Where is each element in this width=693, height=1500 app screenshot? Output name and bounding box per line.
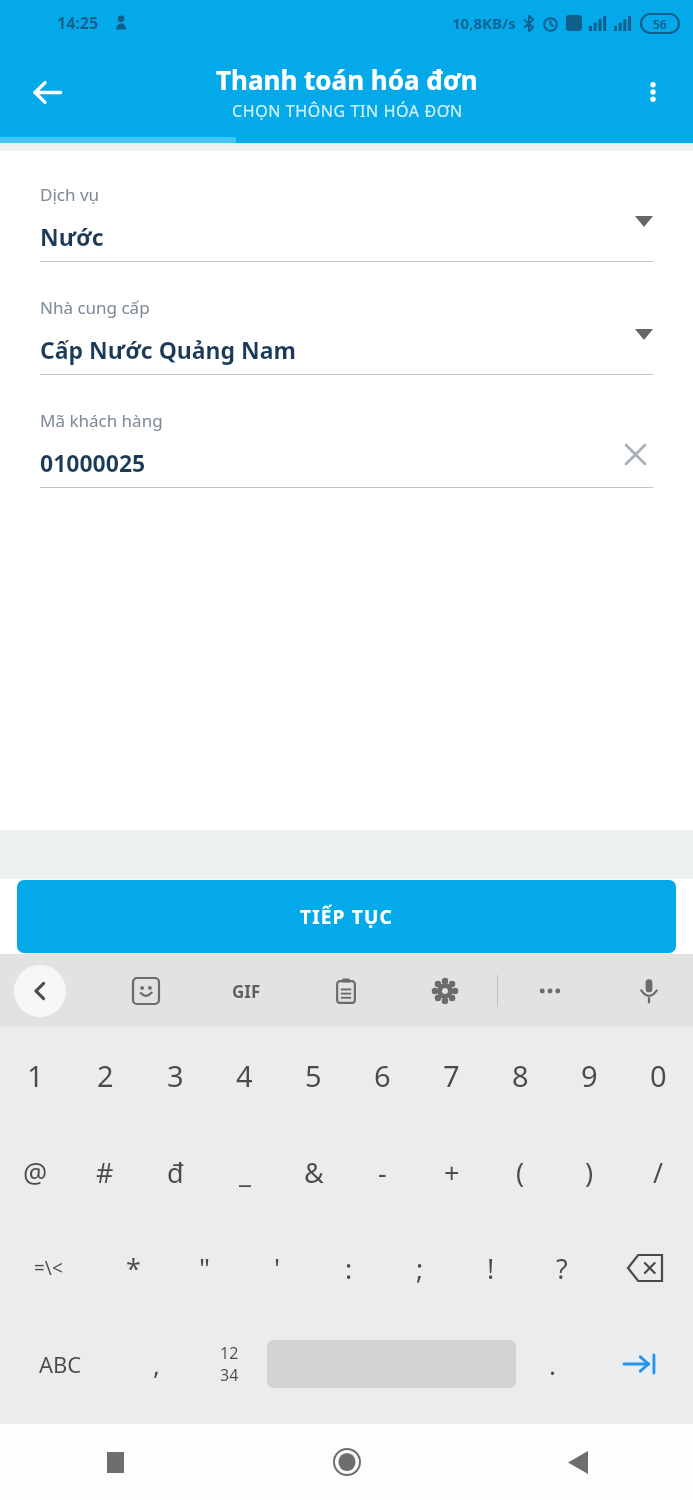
staticText: CHỌN THÔNG TIN HÓA ĐƠN	[232, 100, 463, 122]
staticText: @	[23, 1154, 48, 1191]
button[interactable]: 8	[486, 1027, 555, 1124]
staticText: 12	[220, 1342, 239, 1364]
button[interactable]: 9	[555, 1027, 624, 1124]
staticText: 0	[650, 1056, 667, 1095]
staticText: *	[126, 1250, 141, 1287]
staticText: Cấp Nước Quảng Nam	[40, 334, 296, 365]
button[interactable]: Home	[231, 1424, 462, 1500]
button[interactable]: ,	[120, 1316, 192, 1412]
button[interactable]: Back	[462, 1424, 693, 1500]
staticText: 14:25	[57, 12, 99, 34]
staticText: ABC	[39, 1349, 82, 1379]
staticText: )	[585, 1154, 594, 1191]
staticText: 1	[27, 1056, 44, 1095]
button[interactable]: More	[526, 967, 574, 1015]
button[interactable]: GIF	[221, 966, 271, 1016]
button[interactable]: _	[210, 1124, 279, 1220]
staticText: ?	[556, 1250, 568, 1287]
staticText: :	[345, 1250, 353, 1287]
button[interactable]: 6	[348, 1027, 417, 1124]
button[interactable]: *	[97, 1220, 169, 1316]
staticText: 8	[512, 1056, 529, 1095]
button[interactable]: Backspace	[597, 1220, 693, 1316]
button[interactable]: "	[169, 1220, 241, 1316]
button[interactable]: Nhà cung cấp	[40, 296, 653, 375]
button[interactable]: Numbers	[192, 1316, 267, 1412]
button[interactable]: Back	[14, 59, 80, 125]
staticText: 7	[443, 1056, 460, 1095]
button[interactable]: ABC	[0, 1316, 120, 1412]
staticText: /	[653, 1154, 664, 1191]
button[interactable]: Mã khách hàng	[40, 409, 653, 488]
button[interactable]: 3	[140, 1027, 210, 1124]
staticText: 2	[97, 1056, 114, 1095]
button[interactable]: #	[70, 1124, 140, 1220]
button[interactable]: 4	[210, 1027, 279, 1124]
staticText: 01000025	[40, 447, 146, 478]
button[interactable]: Next	[588, 1316, 693, 1412]
staticText: 10,8KB/s	[452, 13, 516, 33]
button[interactable]: Stickers	[122, 967, 170, 1015]
button[interactable]: .	[516, 1316, 588, 1412]
staticText: Nhà cung cấp	[40, 296, 150, 319]
button[interactable]: !	[455, 1220, 526, 1316]
staticText: !	[487, 1250, 495, 1287]
staticText: 6	[374, 1056, 391, 1095]
button[interactable]: ;	[384, 1220, 455, 1316]
staticText: '	[274, 1250, 281, 1287]
button[interactable]: ?	[526, 1220, 597, 1316]
button[interactable]: Collapse	[14, 965, 66, 1017]
button[interactable]: @	[0, 1124, 70, 1220]
button[interactable]: /	[624, 1124, 693, 1220]
staticText: -	[378, 1154, 387, 1191]
button[interactable]: 7	[417, 1027, 486, 1124]
staticText: (	[516, 1154, 525, 1191]
staticText: ;	[416, 1250, 424, 1287]
button[interactable]: =\<	[0, 1220, 97, 1316]
staticText: GIF	[232, 980, 261, 1003]
button[interactable]: :	[313, 1220, 384, 1316]
button[interactable]: '	[241, 1220, 313, 1316]
staticText: 34	[220, 1364, 239, 1386]
staticText: TIẾP TỤC	[300, 904, 393, 930]
button[interactable]: 2	[70, 1027, 140, 1124]
button[interactable]: Clear	[617, 436, 653, 472]
button[interactable]: +	[417, 1124, 486, 1220]
button[interactable]: Voice input	[625, 967, 673, 1015]
button[interactable]: Recents	[0, 1424, 231, 1500]
staticText: 9	[581, 1056, 598, 1095]
staticText: =\<	[34, 1255, 63, 1281]
button[interactable]: 5	[279, 1027, 348, 1124]
staticText: đ	[167, 1154, 184, 1191]
staticText: &	[304, 1154, 324, 1191]
button[interactable]: Settings	[421, 967, 469, 1015]
staticText: Thanh toán hóa đơn	[216, 62, 478, 97]
staticText: 5	[305, 1056, 322, 1095]
button[interactable]: &	[279, 1124, 348, 1220]
staticText: 4	[236, 1056, 253, 1095]
button[interactable]: (	[486, 1124, 555, 1220]
staticText: Dịch vụ	[40, 183, 100, 206]
staticText: .	[549, 1347, 556, 1382]
button[interactable]: )	[555, 1124, 624, 1220]
staticText: "	[199, 1250, 211, 1287]
button[interactable]: 1	[0, 1027, 70, 1124]
staticText: _	[239, 1154, 251, 1191]
staticText: +	[444, 1154, 460, 1191]
button[interactable]: Clipboard	[322, 967, 370, 1015]
staticText: ,	[153, 1347, 160, 1382]
staticText: Nước	[40, 221, 104, 252]
staticText: Mã khách hàng	[40, 409, 163, 432]
button[interactable]: More options	[625, 64, 681, 120]
staticText: 56	[653, 16, 667, 32]
button[interactable]: -	[348, 1124, 417, 1220]
button[interactable]: TIẾP TỤC	[17, 880, 676, 953]
button[interactable]: 0	[624, 1027, 693, 1124]
button[interactable]: đ	[140, 1124, 210, 1220]
staticText: #	[96, 1154, 114, 1191]
staticText: 3	[167, 1056, 184, 1095]
button[interactable]: Dịch vụ	[40, 183, 653, 262]
